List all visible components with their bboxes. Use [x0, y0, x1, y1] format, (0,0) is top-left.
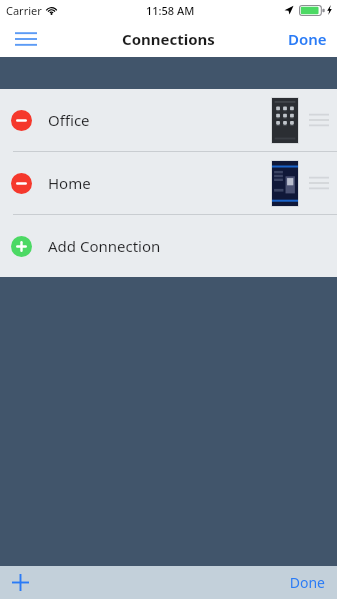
button[interactable]: Remove Home: [0, 152, 337, 214]
staticText: Done: [288, 29, 327, 49]
button[interactable]: Menu: [8, 22, 44, 56]
button[interactable]: Remove Home: [10, 172, 32, 194]
button[interactable]: Add connection: [10, 235, 32, 257]
staticText: Add Connection: [48, 236, 161, 256]
button[interactable]: Done: [278, 20, 337, 57]
staticText: Connections: [122, 29, 215, 49]
staticText: Home: [48, 173, 91, 193]
staticText: Carrier: [6, 3, 42, 18]
button[interactable]: Remove Office: [0, 89, 337, 151]
button[interactable]: Done: [277, 566, 337, 599]
button[interactable]: Add: [0, 566, 41, 599]
staticText: Done: [289, 573, 325, 592]
button[interactable]: Remove Office: [10, 109, 32, 131]
button[interactable]: Add connection: [0, 215, 337, 277]
staticText: 11:58 AM: [146, 3, 195, 18]
staticText: Office: [48, 110, 90, 130]
